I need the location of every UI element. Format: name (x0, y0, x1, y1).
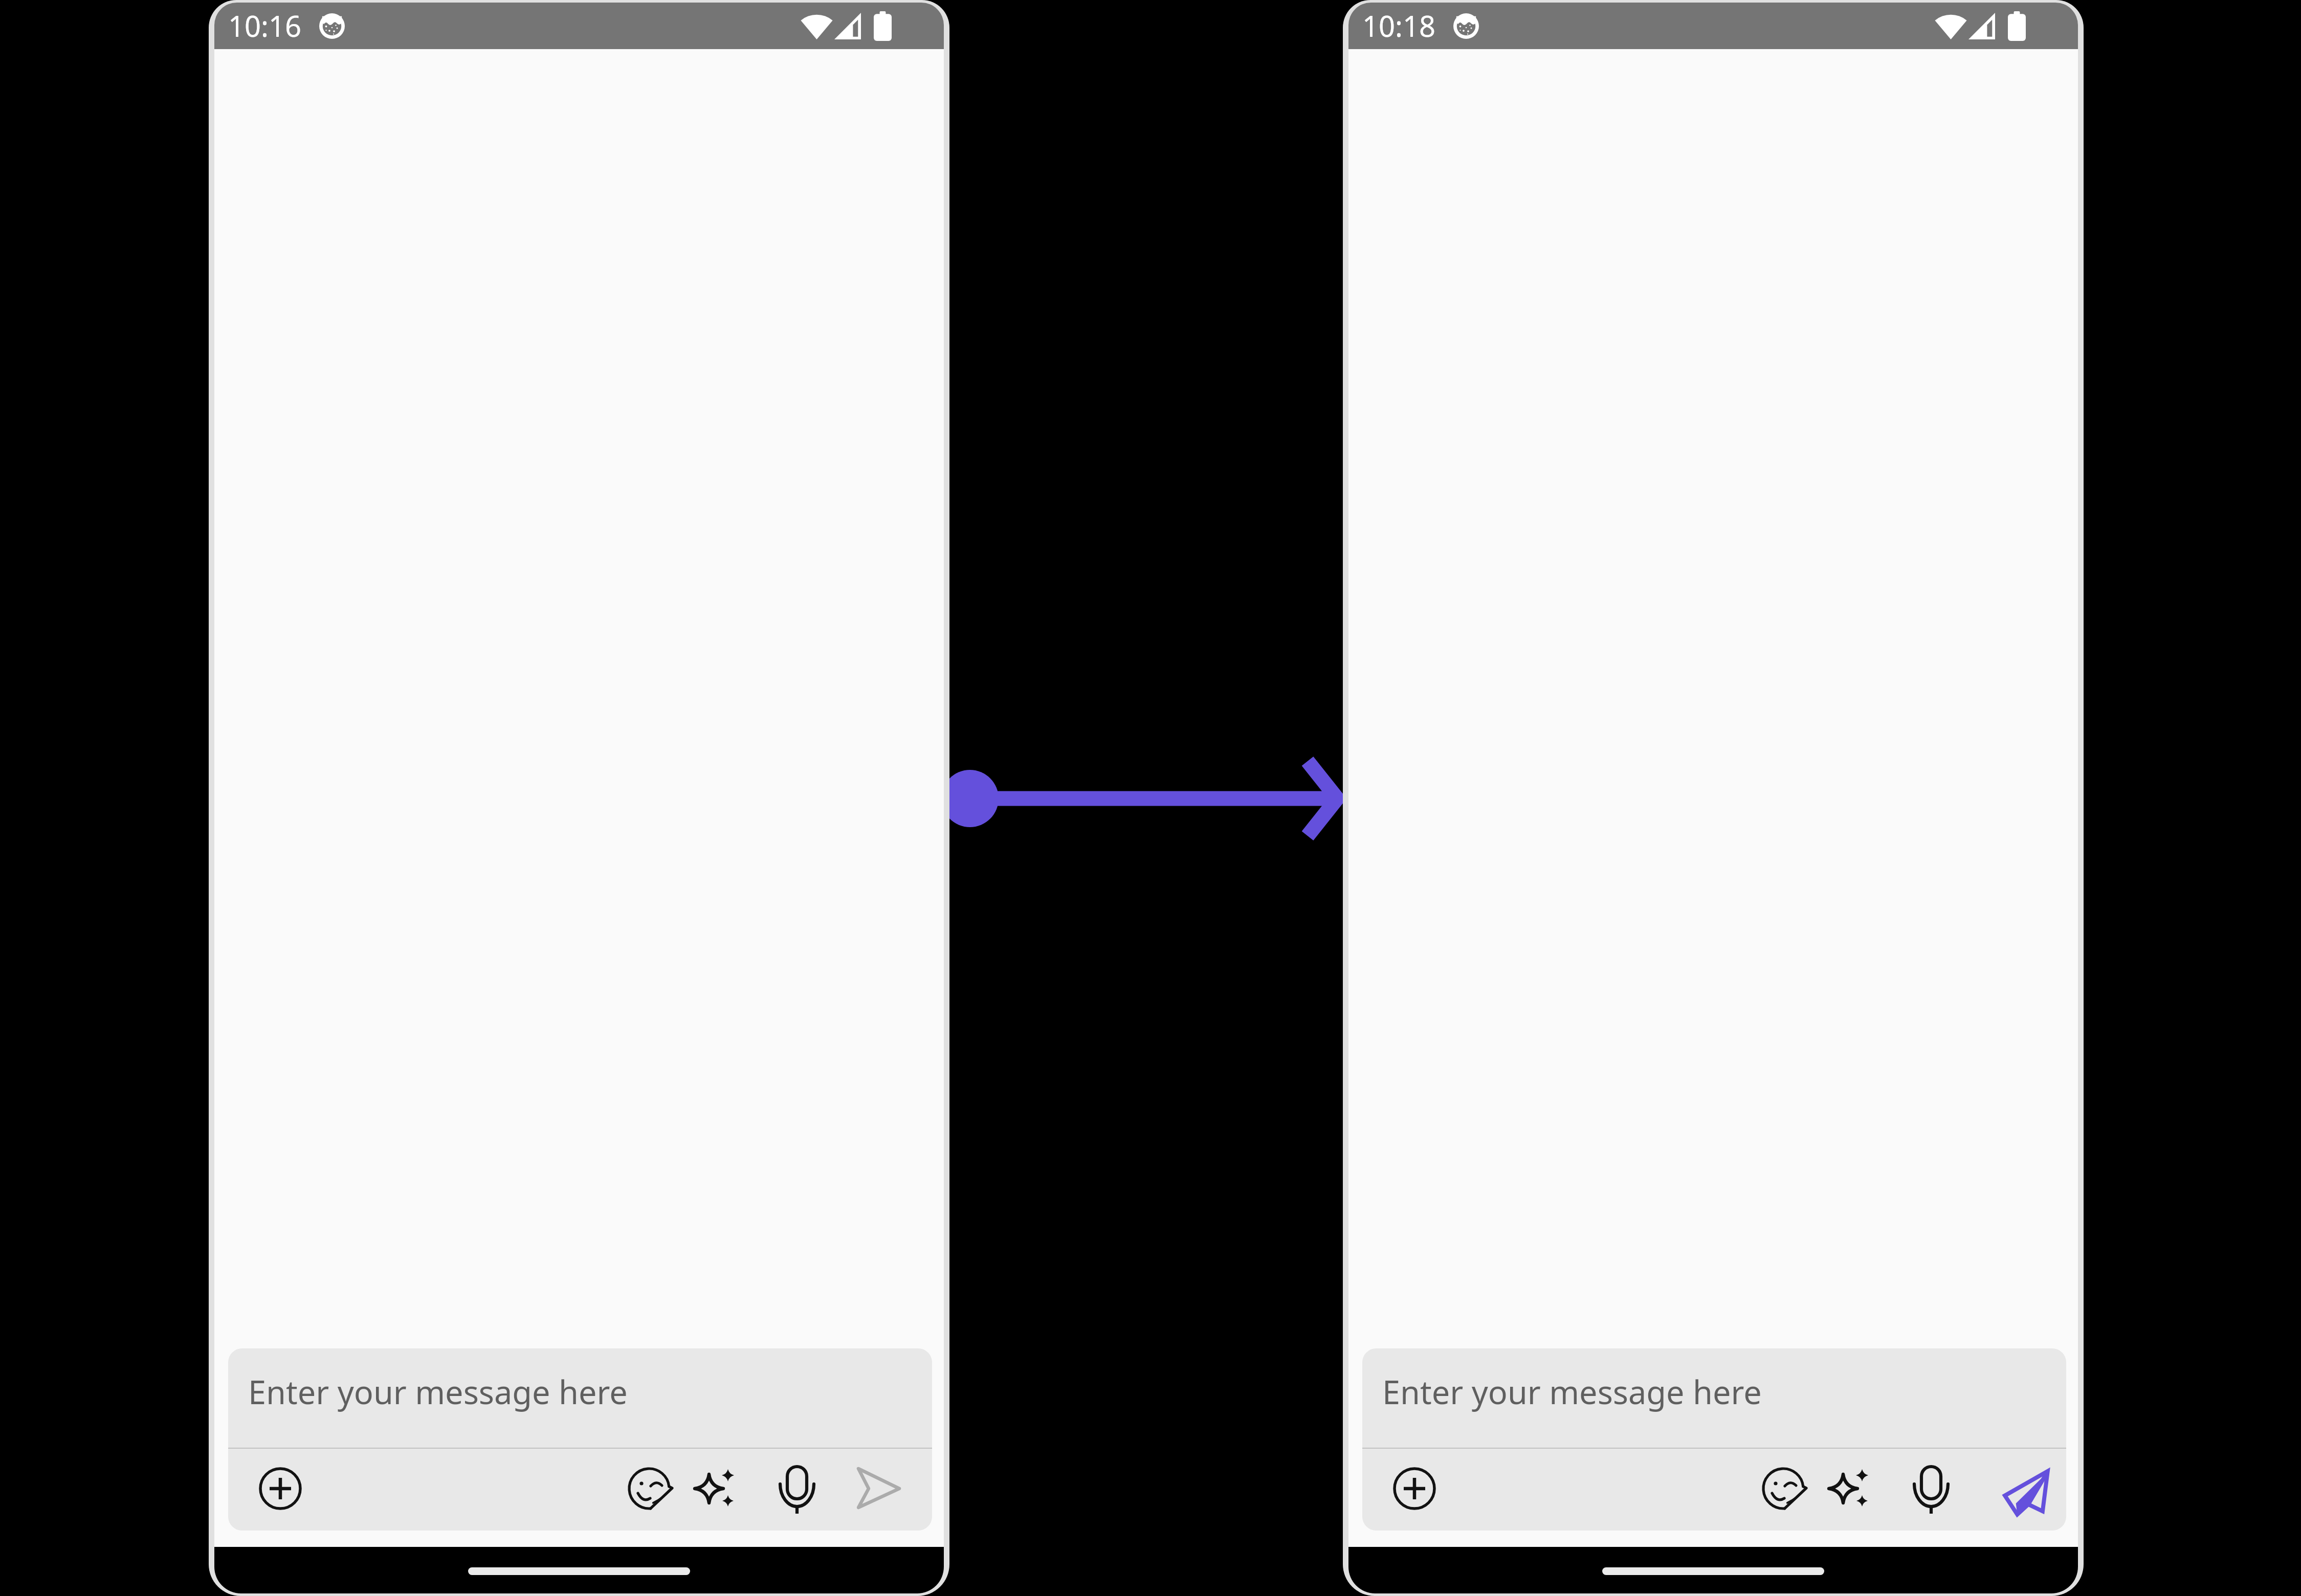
staticText: Enter your message here (248, 1370, 628, 1414)
button[interactable]: Send (1970, 1445, 2056, 1531)
button[interactable]: Enter your message here (1362, 1348, 2066, 1448)
button[interactable]: Voice message (769, 1460, 825, 1517)
button[interactable]: Send (851, 1460, 907, 1517)
staticText: Enter your message here (1382, 1370, 1762, 1414)
button[interactable]: Add attachment (252, 1460, 308, 1517)
button[interactable]: Stickers (622, 1460, 678, 1517)
staticText: 10:16 (228, 6, 302, 45)
button[interactable]: AI suggestions (1820, 1460, 1876, 1517)
button[interactable]: Enter your message here (228, 1348, 932, 1448)
button[interactable]: Stickers (1756, 1460, 1812, 1517)
button[interactable]: AI suggestions (686, 1460, 742, 1517)
button[interactable]: Voice message (1903, 1460, 1959, 1517)
button[interactable]: Add attachment (1386, 1460, 1443, 1517)
staticText: 10:18 (1362, 6, 1436, 45)
